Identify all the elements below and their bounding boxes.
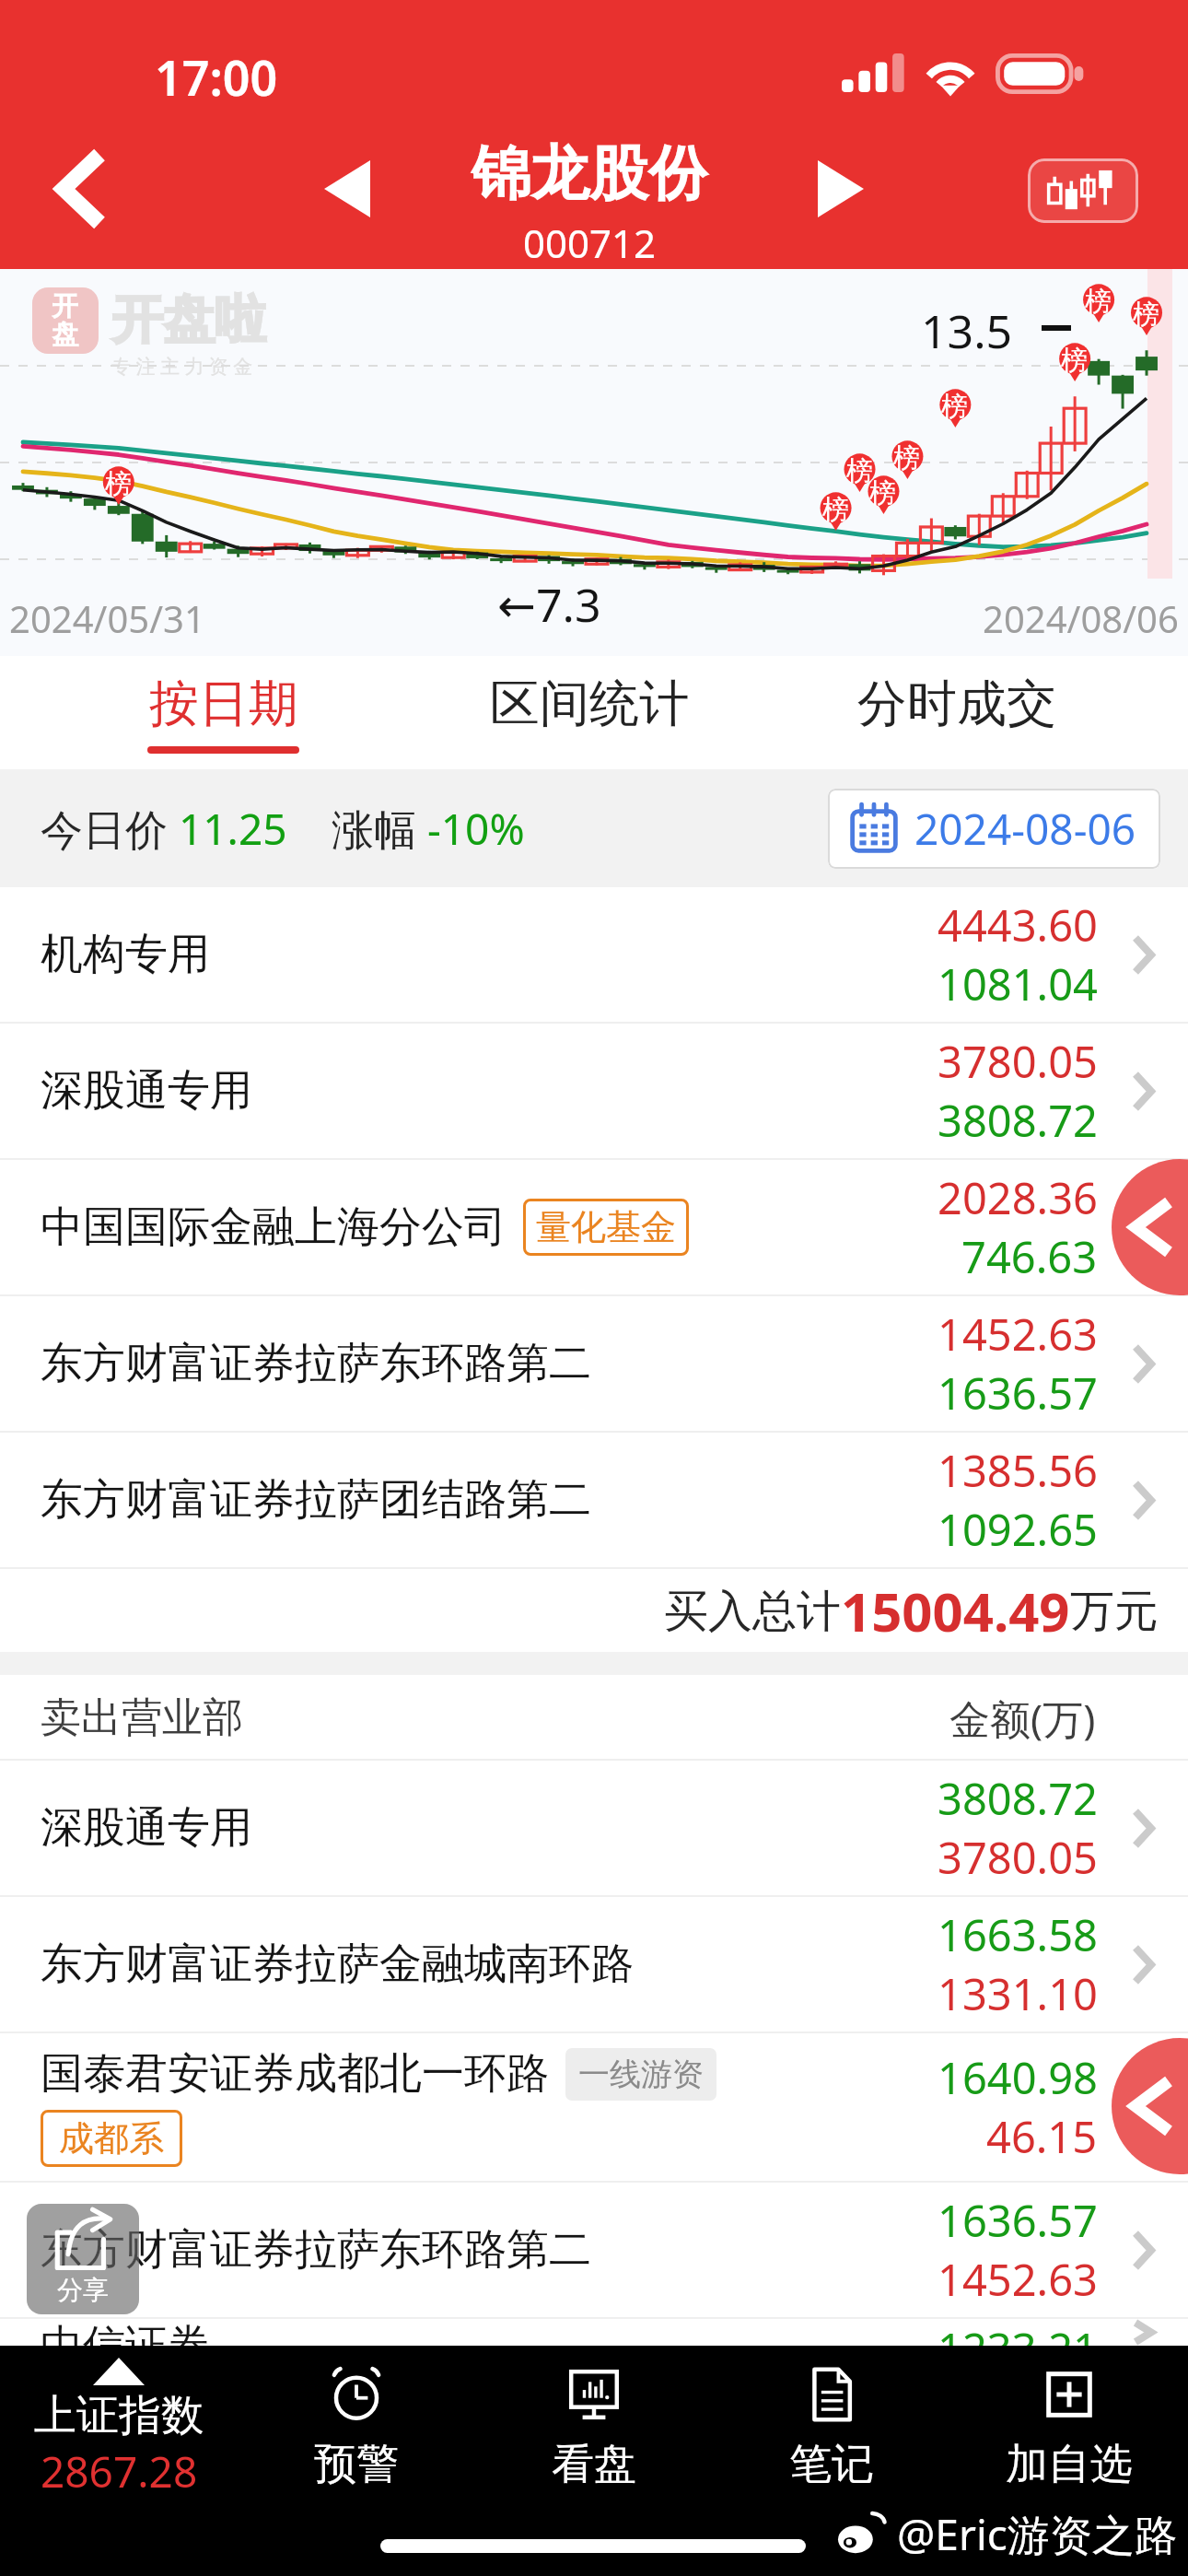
staticText: 1081.04 [938, 954, 1098, 1013]
staticText: 2024/05/31 [9, 593, 205, 643]
staticText: 东方财富证券拉萨团结路第二 [41, 1473, 591, 1527]
staticText: 1452.63 [938, 2250, 1098, 2309]
staticText: 11.25 [179, 800, 287, 858]
staticText: 量化基金 [536, 1205, 676, 1249]
button[interactable]: 东方财富证券拉萨东环路第二 [0, 2183, 1188, 2319]
staticText: 一线游资 [578, 2055, 704, 2094]
staticText: 46.15 [986, 2107, 1098, 2166]
staticText: 专 注 主 力 资 金 [111, 353, 253, 380]
staticText: 预警 [314, 2438, 399, 2491]
staticText: 15004.49 [841, 1575, 1070, 1647]
staticText: 2024-08-06 [914, 800, 1136, 858]
staticText: 榜 [1085, 285, 1112, 319]
staticText: 买入总计 [664, 1584, 841, 1639]
staticText: 3808.72 [938, 1769, 1098, 1828]
staticText: 中信证券 [41, 2319, 210, 2346]
staticText: 1640.98 [938, 2048, 1098, 2107]
staticText: 17:00 [155, 44, 278, 110]
staticText: 加自选 [1006, 2438, 1133, 2491]
staticText: 746.63 [961, 1227, 1098, 1286]
staticText: 深股通专用 [41, 1064, 252, 1118]
staticText: 13.5 [921, 299, 1013, 362]
staticText: 3780.05 [938, 1828, 1098, 1887]
button[interactable]: Open detail panel [1112, 2038, 1188, 2174]
staticText: 1385.56 [938, 1441, 1098, 1500]
button[interactable]: 机构专用 [0, 887, 1188, 1024]
staticText: 榜 [893, 441, 920, 475]
button[interactable]: 深股通专用 [0, 1024, 1188, 1160]
staticText: ←7.3 [497, 573, 601, 636]
staticText: 1663.58 [938, 1905, 1098, 1964]
button[interactable]: Back [20, 129, 140, 249]
staticText: 2867.28 [41, 2442, 198, 2500]
staticText: 分享 [57, 2274, 109, 2306]
button[interactable]: 国泰君安证券成都北一环路 [0, 2033, 1188, 2183]
staticText: 深股通专用 [41, 1801, 252, 1855]
staticText: 看盘 [552, 2438, 636, 2491]
staticText: 今日价 [41, 800, 179, 858]
staticText: 中国国际金融上海分公司 [41, 1200, 507, 1254]
staticText: 3780.05 [938, 1032, 1098, 1091]
staticText: 4443.60 [938, 896, 1098, 954]
staticText: 2024/08/06 [983, 593, 1179, 643]
button[interactable]: 按日期 [39, 656, 407, 769]
staticText: 上证指数 [34, 2389, 204, 2442]
staticText: 榜 [822, 493, 849, 527]
staticText: 榜 [846, 454, 873, 488]
button[interactable]: 分时成交 [773, 656, 1141, 769]
staticText: 笔记 [789, 2438, 874, 2491]
staticText: 1636.57 [938, 2191, 1098, 2250]
button[interactable]: 笔记 [713, 2346, 950, 2512]
button[interactable]: 中信证券 [0, 2319, 1188, 2346]
staticText: 东方财富证券拉萨东环路第二 [41, 2223, 591, 2277]
button[interactable]: 上证指数 [0, 2346, 238, 2512]
staticText: 区间统计 [490, 673, 689, 735]
staticText: 开盘 [52, 289, 79, 352]
staticText: 东方财富证券拉萨东环路第二 [41, 1337, 591, 1390]
staticText: @Eric游资之路 [897, 2505, 1177, 2563]
button[interactable]: Share [27, 2204, 139, 2314]
staticText: 万元 [1070, 1584, 1159, 1639]
staticText: 1331.10 [938, 1964, 1098, 2023]
button[interactable]: Next stock [781, 129, 901, 249]
button[interactable]: Previous stock [287, 129, 407, 249]
staticText: 按日期 [149, 673, 298, 735]
staticText: 榜 [941, 390, 968, 424]
staticText: 国泰君安证券成都北一环路 [41, 2047, 549, 2101]
button[interactable]: 东方财富证券拉萨金融城南环路 [0, 1897, 1188, 2033]
staticText: 东方财富证券拉萨金融城南环路 [41, 1938, 634, 1991]
button[interactable]: 2024-08-06 [828, 789, 1160, 869]
staticText: 涨幅 [332, 800, 427, 858]
staticText: 卖出营业部 [41, 1692, 243, 1743]
staticText: -10% [427, 800, 525, 858]
button[interactable]: Open detail panel [1112, 1159, 1188, 1295]
staticText: 机构专用 [41, 928, 210, 981]
staticText: 1233.21 [938, 2319, 1098, 2346]
staticText: 分时成交 [857, 673, 1056, 735]
button[interactable]: 中国国际金融上海分公司 [0, 1160, 1188, 1296]
staticText: 榜 [1061, 344, 1088, 378]
staticText: 2028.36 [938, 1168, 1098, 1227]
staticText: 1092.65 [938, 1500, 1098, 1559]
staticText: 1636.57 [938, 1364, 1098, 1423]
staticText: 金额(万) [949, 1691, 1096, 1746]
button[interactable]: 东方财富证券拉萨东环路第二 [0, 1296, 1188, 1433]
button[interactable]: 东方财富证券拉萨团结路第二 [0, 1433, 1188, 1569]
staticText: 锦龙股份 [472, 136, 707, 211]
button[interactable]: K line chart [1028, 158, 1138, 223]
staticText: 1452.63 [938, 1305, 1098, 1364]
staticText: 榜 [869, 476, 896, 510]
staticText: 成都系 [59, 2116, 164, 2160]
staticText: 000712 [523, 217, 657, 269]
staticText: 开盘啦 [111, 287, 266, 353]
button[interactable]: 深股通专用 [0, 1761, 1188, 1897]
staticText: 榜 [105, 467, 132, 501]
button[interactable]: 看盘 [475, 2346, 713, 2512]
staticText: 3808.72 [938, 1091, 1098, 1150]
staticText: 榜 [1133, 298, 1159, 332]
button[interactable]: 加自选 [950, 2346, 1188, 2512]
button[interactable]: 预警 [238, 2346, 475, 2512]
button[interactable]: 区间统计 [405, 656, 774, 769]
